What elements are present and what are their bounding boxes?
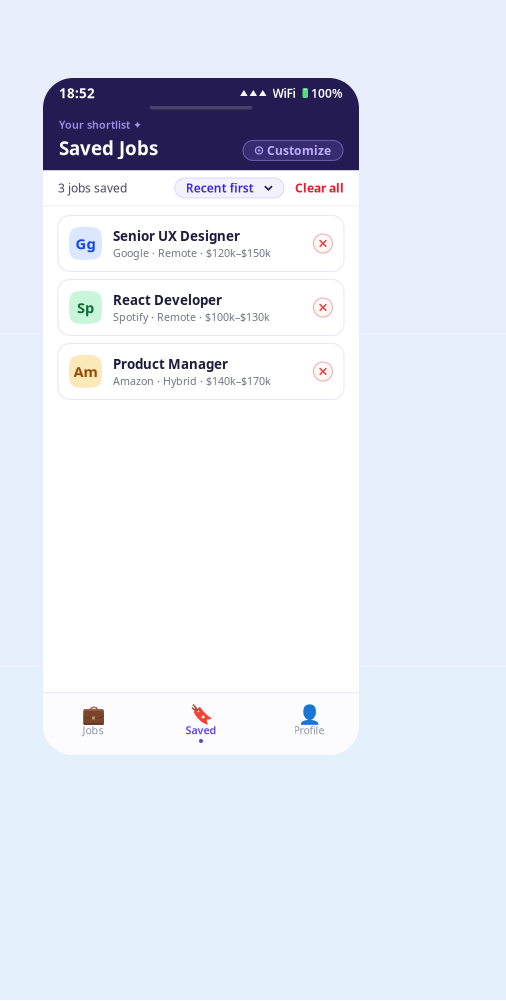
button[interactable]: 👤 (263, 699, 355, 749)
staticText: Clear all (295, 180, 344, 196)
button[interactable]: Customize (243, 140, 343, 160)
staticText: 💼 (81, 704, 104, 725)
staticText: 👤 (297, 704, 320, 725)
staticText: React Developer (113, 291, 222, 309)
button[interactable]: Recent first (175, 178, 284, 198)
staticText: Gg (75, 234, 95, 253)
staticText: Profile (293, 723, 324, 737)
button[interactable]: Sp (58, 279, 344, 335)
staticText: Recent first (186, 180, 254, 196)
staticText: 3 jobs saved (58, 180, 127, 196)
staticText: Am (73, 362, 97, 381)
staticText: 18:52 (59, 84, 95, 102)
staticText: Saved Jobs (59, 136, 158, 160)
staticText: WiFi (272, 85, 295, 101)
staticText: Customize (267, 142, 331, 158)
staticText: Google · Remote · $120k–$150k (113, 246, 271, 260)
staticText: Spotify · Remote · $100k–$130k (113, 310, 270, 324)
button[interactable]: Gg (58, 215, 344, 271)
button[interactable]: Am (58, 343, 344, 399)
staticText: 100% (311, 85, 343, 101)
staticText: Your shortlist ✦ (59, 117, 142, 132)
staticText: Sp (77, 298, 94, 317)
button[interactable]: Clear all (284, 180, 344, 196)
button[interactable]: 🔖 (155, 699, 247, 749)
staticText: Amazon · Hybrid · $140k–$170k (113, 374, 271, 388)
staticText: Saved (185, 723, 216, 737)
button[interactable]: 💼 (47, 699, 139, 749)
staticText: Product Manager (113, 355, 228, 373)
staticText: Senior UX Designer (113, 227, 240, 245)
staticText: Jobs (82, 723, 103, 737)
staticText: 🔖 (189, 704, 212, 725)
